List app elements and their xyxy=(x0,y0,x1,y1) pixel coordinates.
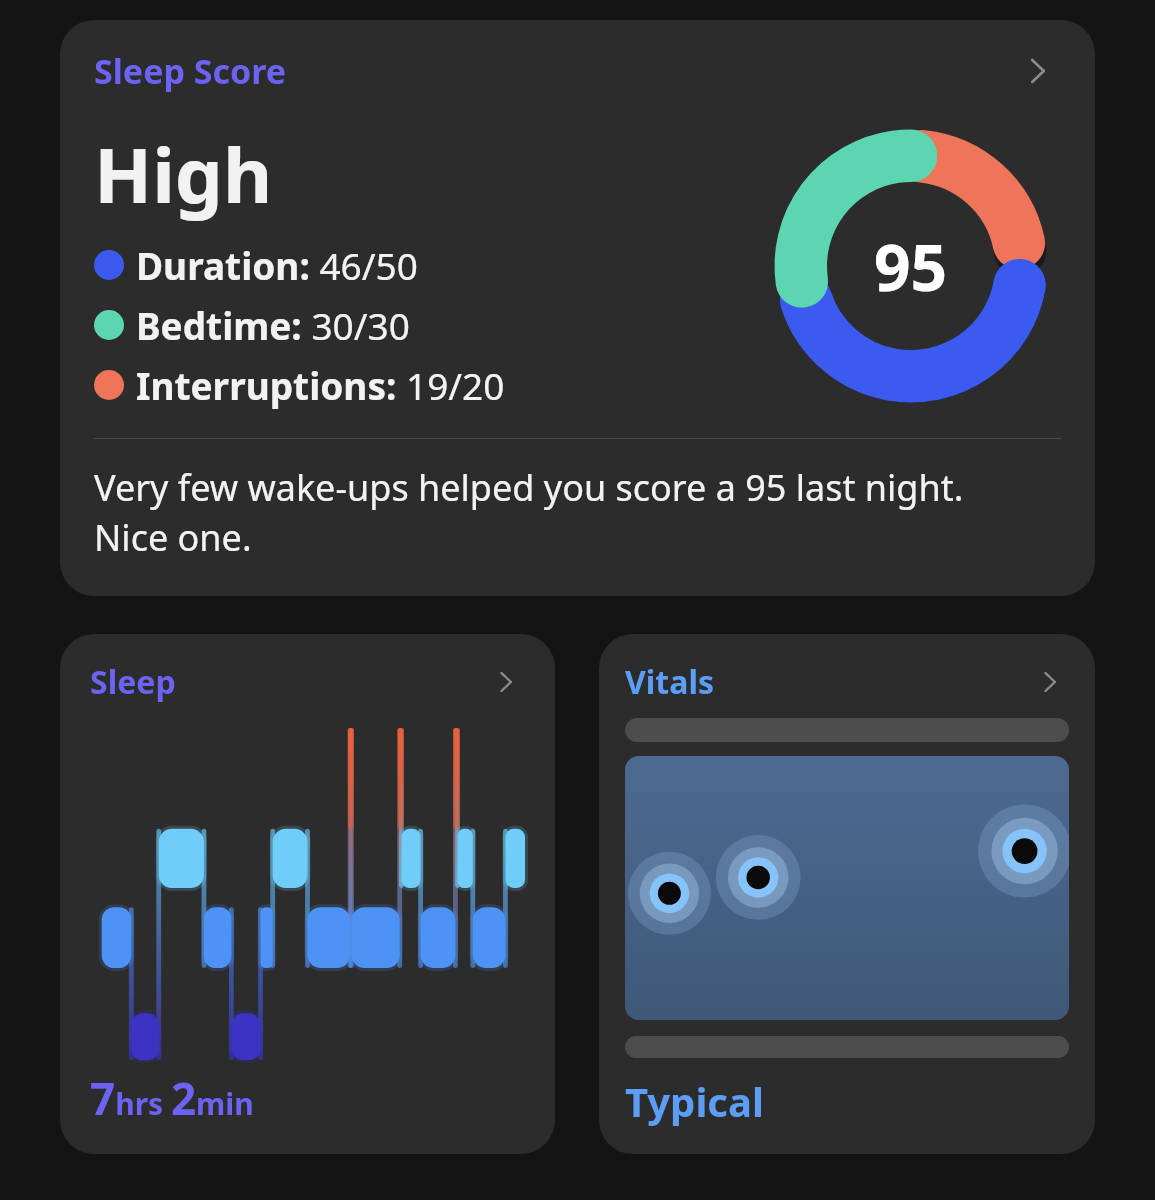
other: Open Sleep details xyxy=(489,664,525,700)
staticText: Bedtime: 30/30 xyxy=(136,300,410,350)
button[interactable]: Sleep Score xyxy=(60,20,1095,596)
staticText: Vitals xyxy=(625,660,715,704)
staticText: Sleep xyxy=(90,660,176,704)
staticText: Typical xyxy=(625,1074,764,1128)
staticText: 95 xyxy=(874,223,948,310)
other: Open Sleep Score xyxy=(1017,49,1061,93)
staticText: Very few wake-ups helped you score a 95 … xyxy=(94,463,964,562)
staticText: High xyxy=(94,122,273,226)
staticText: Duration: 46/50 xyxy=(136,240,418,290)
staticText: Interruptions: 19/20 xyxy=(136,360,505,410)
button[interactable]: Sleep xyxy=(60,634,555,1154)
staticText: 7hrs 2min xyxy=(90,1068,254,1128)
staticText: Sleep Score xyxy=(94,48,287,94)
other: Open Vitals details xyxy=(1033,664,1069,700)
button[interactable]: Vitals xyxy=(599,634,1095,1154)
